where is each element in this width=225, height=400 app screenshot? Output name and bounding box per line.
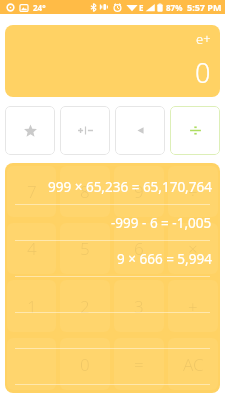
staticText: 2: [80, 295, 90, 318]
staticText: 0: [80, 353, 90, 376]
button[interactable]: 2: [60, 280, 110, 332]
button[interactable]: ×: [168, 223, 218, 274]
staticText: 24°: [33, 2, 46, 13]
staticText: AC: [183, 353, 204, 376]
button[interactable]: 5: [60, 223, 110, 274]
button[interactable]: 0: [60, 338, 110, 390]
staticText: ÷: [188, 180, 198, 203]
staticText: 4: [27, 237, 37, 260]
button[interactable]: 7: [7, 166, 56, 217]
button[interactable]: 1: [7, 280, 56, 332]
button[interactable]: 9: [114, 166, 164, 217]
staticText: 87%: [166, 2, 183, 13]
staticText: +: [188, 295, 198, 318]
staticText: 5: [80, 237, 90, 260]
staticText: 1: [27, 295, 37, 318]
staticText: 6: [134, 237, 144, 260]
button[interactable]: [7, 338, 56, 390]
staticText: 9 × 666 = 5,994: [117, 250, 212, 268]
button[interactable]: 8: [60, 166, 110, 217]
staticText: 0: [195, 54, 211, 91]
button[interactable]: AC: [168, 338, 218, 390]
button[interactable]: 6: [114, 223, 164, 274]
staticText: 7: [27, 180, 37, 203]
button[interactable]: =: [114, 338, 164, 390]
staticText: 9: [134, 180, 144, 203]
staticText: ×: [188, 237, 198, 260]
button[interactable]: Backspace: [115, 106, 165, 155]
staticText: 3: [134, 295, 144, 318]
button[interactable]: e+: [5, 25, 220, 97]
button[interactable]: Toggle sign: [60, 106, 110, 155]
staticText: 5:57 PM: [187, 1, 222, 13]
staticText: e+: [196, 30, 211, 48]
button[interactable]: Favorite: [5, 106, 55, 155]
staticText: E: [139, 2, 144, 13]
button[interactable]: 4: [7, 223, 56, 274]
button[interactable]: 3: [114, 280, 164, 332]
staticText: 999 × 65,236 = 65,170,764: [48, 178, 212, 196]
staticText: 8: [80, 180, 90, 203]
staticText: -999 - 6 = -1,005: [111, 214, 212, 232]
button[interactable]: +: [168, 280, 218, 332]
button[interactable]: Divide: [170, 106, 220, 155]
button[interactable]: ÷: [168, 166, 218, 217]
